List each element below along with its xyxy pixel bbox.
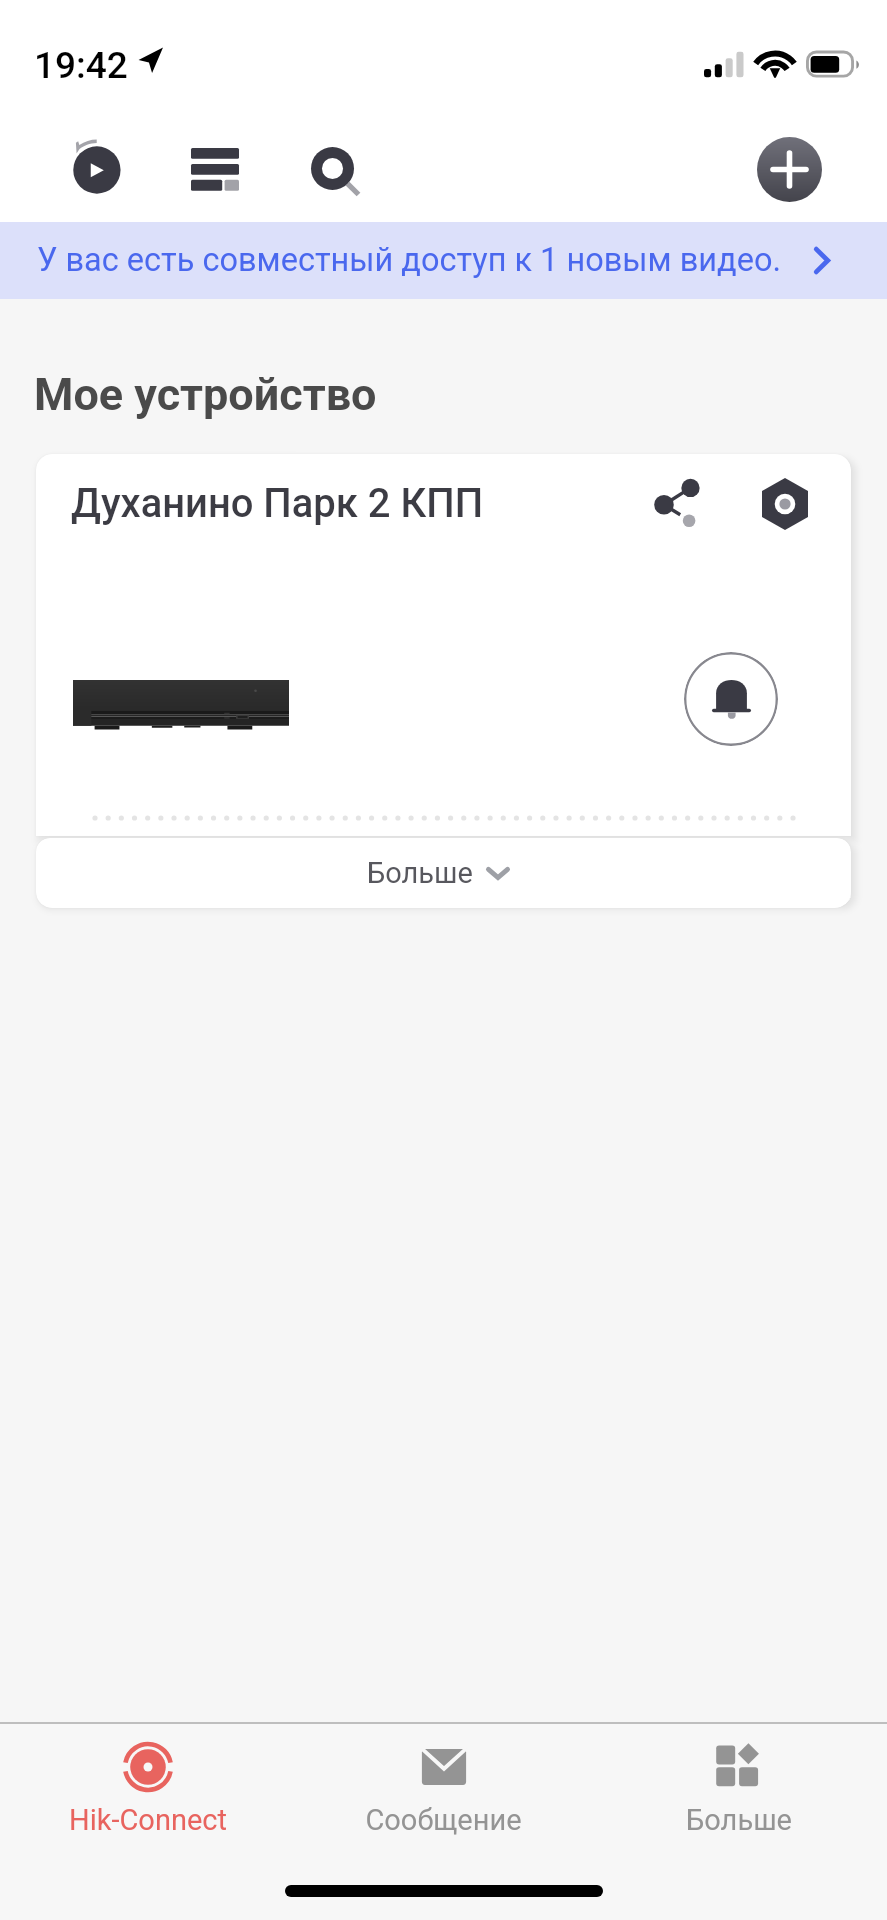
button[interactable]: Add device <box>757 137 822 202</box>
staticText: Больше <box>367 856 473 890</box>
button[interactable]: Больше <box>36 838 851 908</box>
button[interactable]: Settings <box>750 469 820 539</box>
button[interactable]: Playback <box>63 134 131 202</box>
button[interactable]: Search <box>302 138 370 204</box>
staticText: Сообщение <box>365 1803 522 1837</box>
staticText: Мое устройство <box>34 368 377 421</box>
button[interactable]: Hik-Connect <box>0 1724 295 1854</box>
staticText: 19:42 <box>34 44 128 87</box>
button[interactable]: Alarm notification <box>684 652 778 746</box>
button[interactable]: Сообщение <box>295 1724 591 1854</box>
button[interactable]: У вас есть совместный доступ к 1 новым в… <box>0 222 887 299</box>
button[interactable]: Больше <box>591 1724 887 1854</box>
staticText: У вас есть совместный доступ к 1 новым в… <box>37 241 781 279</box>
button[interactable]: Device list <box>181 138 249 202</box>
staticText: Духанино Парк 2 КПП <box>71 480 484 527</box>
staticText: Больше <box>686 1803 792 1837</box>
button[interactable]: Share <box>643 469 711 537</box>
staticText: Hik-Connect <box>69 1803 227 1837</box>
